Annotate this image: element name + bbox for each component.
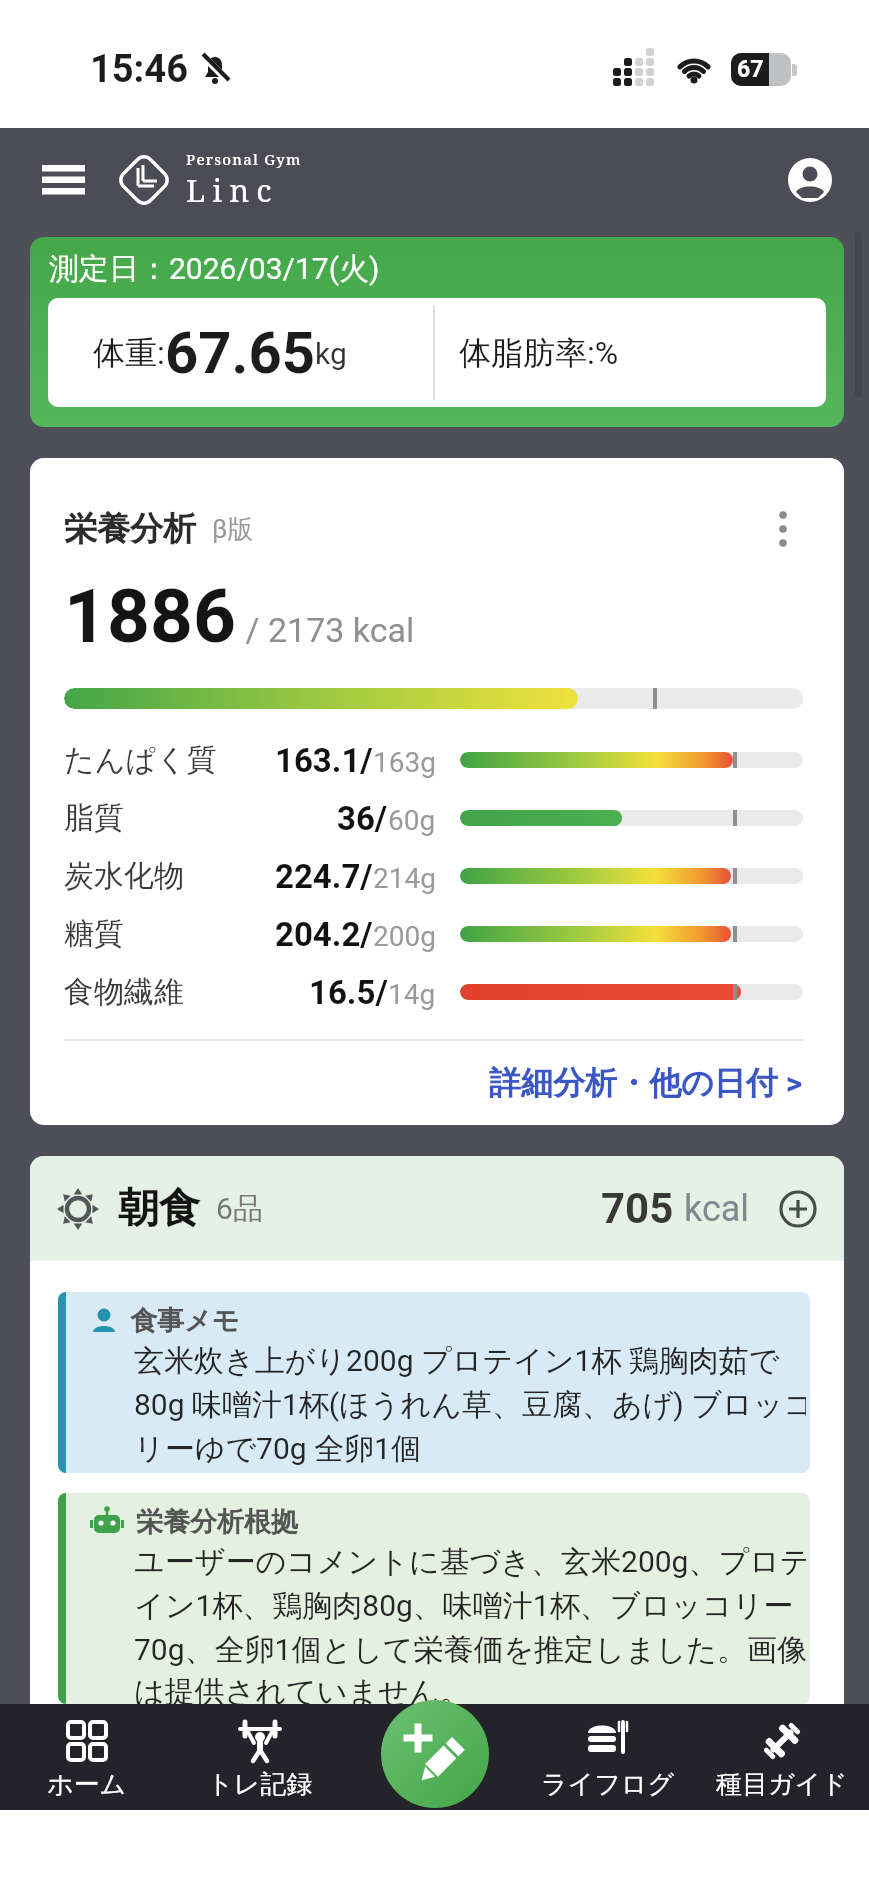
button[interactable]: 朝食 — [30, 1156, 844, 1261]
staticText: ユーザーのコメントに基づき、玄米200g、プロテ イン1杯、鶏胸肉80g、味噌汁… — [134, 1543, 806, 1704]
staticText: 163g — [373, 746, 436, 779]
staticText: 163.1/ — [275, 741, 373, 780]
staticText: 炭水化物 — [64, 857, 184, 895]
staticText: β版 — [212, 513, 254, 546]
staticText: ライフログ — [541, 1768, 675, 1801]
staticText: kcal — [684, 1188, 750, 1230]
staticText: 6品 — [216, 1190, 263, 1228]
staticText: 脂質 — [64, 799, 124, 837]
staticText: 16.5/ — [309, 973, 388, 1012]
staticText: / — [237, 610, 268, 650]
staticText: kg — [315, 336, 347, 371]
button[interactable] — [787, 157, 833, 203]
staticText: 60g — [388, 804, 436, 837]
button[interactable] — [778, 1189, 818, 1229]
staticText: 測定日：2026/03/17(火) — [49, 250, 380, 288]
staticText: 36/ — [337, 799, 388, 838]
staticText: 体重: — [93, 333, 165, 373]
button[interactable]: ライフログ — [521, 1704, 695, 1810]
staticText: 214g — [373, 862, 436, 895]
staticText: 2173 kcal — [268, 610, 415, 650]
staticText: Linc — [186, 169, 279, 211]
staticText: 15:46 — [90, 47, 188, 92]
staticText: 種目ガイド — [716, 1768, 848, 1801]
staticText: ホーム — [47, 1768, 127, 1801]
button[interactable] — [40, 157, 86, 203]
button[interactable]: 詳細分析・他の日付 > — [64, 1063, 803, 1103]
staticText: 食事メモ — [130, 1304, 240, 1338]
button[interactable]: 種目ガイド — [695, 1704, 869, 1810]
staticText: 224.7/ — [275, 857, 373, 896]
button[interactable] — [381, 1700, 489, 1808]
button[interactable] — [763, 509, 803, 549]
button[interactable]: 測定日：2026/03/17(火) — [30, 237, 844, 427]
staticText: 200g — [373, 920, 436, 953]
staticText: 糖質 — [64, 915, 124, 953]
staticText: Personal Gym — [186, 149, 302, 169]
staticText: 705 — [601, 1184, 674, 1233]
staticText: 67 — [737, 56, 764, 83]
staticText: 玄米炊き上がり200g プロテイン1杯 鶏胸肉茹で 80g 味噌汁1杯(ほうれん… — [134, 1342, 806, 1468]
staticText: 食物繊維 — [64, 973, 184, 1011]
staticText: 栄養分析根拠 — [136, 1505, 298, 1539]
staticText: 1886 — [64, 572, 237, 660]
staticText: 栄養分析 — [64, 508, 196, 550]
staticText: 詳細分析・他の日付 > — [489, 1063, 803, 1103]
staticText: たんぱく質 — [64, 741, 217, 779]
button[interactable] — [347, 1704, 521, 1810]
button[interactable]: ホーム — [0, 1704, 173, 1810]
staticText: 14g — [388, 978, 436, 1011]
staticText: 67.65 — [165, 319, 315, 387]
staticText: 体脂肪率:% — [459, 333, 619, 373]
staticText: 204.2/ — [275, 915, 373, 954]
button[interactable]: トレ記録 — [173, 1704, 347, 1810]
staticText: 朝食 — [118, 1183, 200, 1235]
staticText: トレ記録 — [207, 1768, 313, 1801]
